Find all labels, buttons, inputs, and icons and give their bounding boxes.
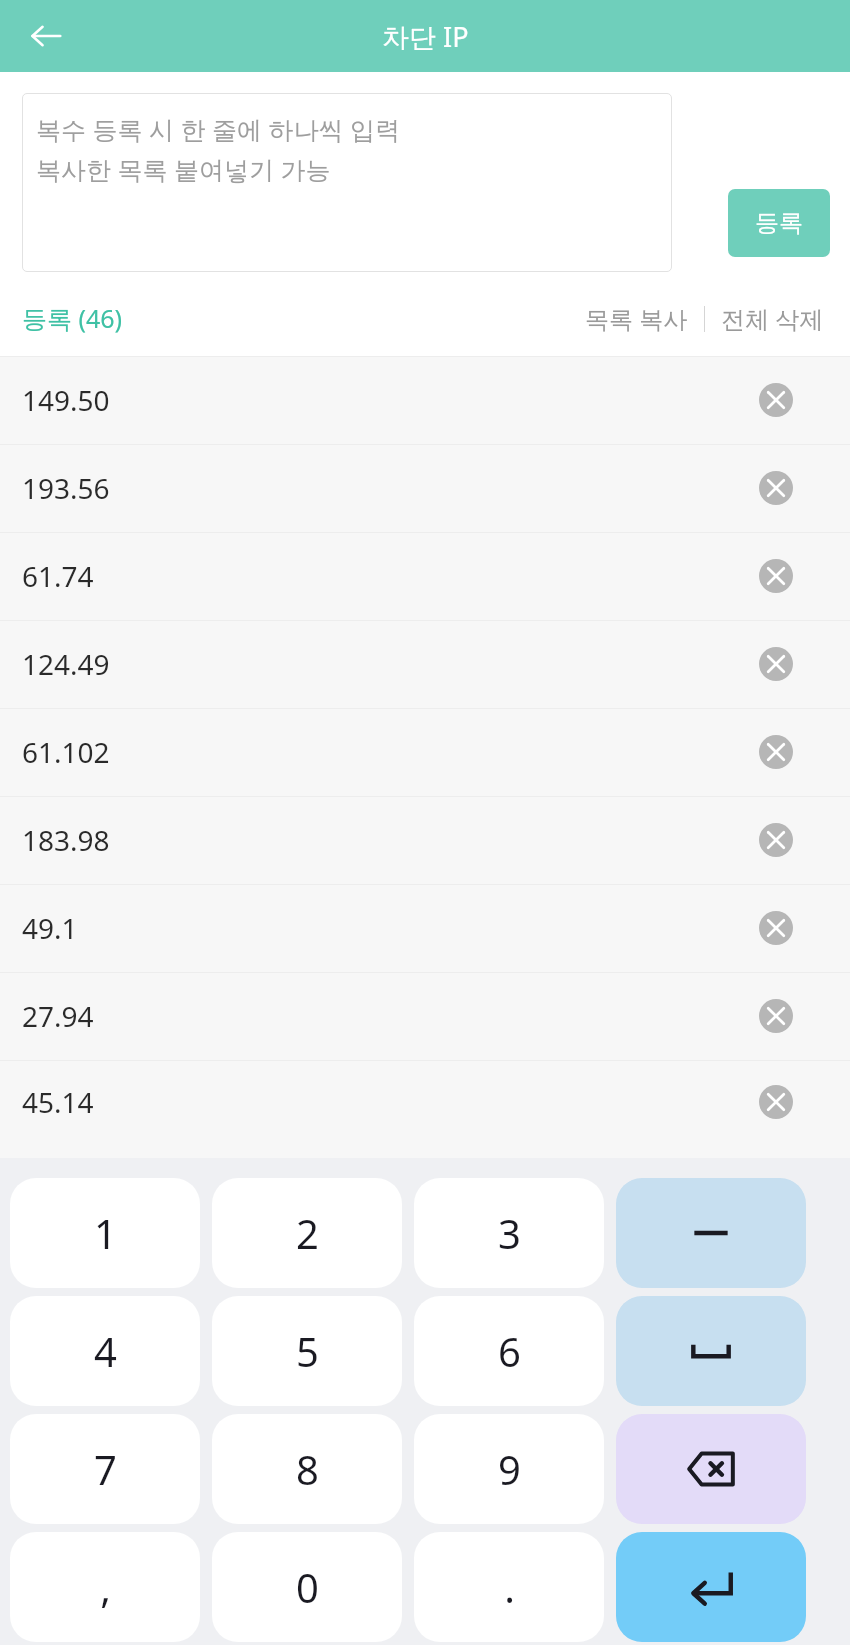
button[interactable]: Delete bbox=[752, 552, 800, 600]
button[interactable]: 6 bbox=[414, 1296, 604, 1406]
staticText: 등록 bbox=[755, 208, 803, 238]
button[interactable]: 183.98 bbox=[0, 796, 850, 884]
staticText: 차단 IP bbox=[382, 18, 469, 55]
staticText: 7 bbox=[94, 1442, 117, 1496]
button[interactable]: 193.56 bbox=[0, 444, 850, 532]
button[interactable]: 3 bbox=[414, 1178, 604, 1288]
button[interactable]: Space bbox=[616, 1296, 806, 1406]
staticText: , bbox=[100, 1560, 111, 1614]
button[interactable]: Delete bbox=[752, 1078, 800, 1126]
button[interactable]: Minus bbox=[616, 1178, 806, 1288]
staticText: 49.1 bbox=[22, 909, 78, 947]
button[interactable]: Delete bbox=[752, 640, 800, 688]
staticText: 193.56 bbox=[22, 469, 110, 507]
staticText: 3 bbox=[498, 1206, 521, 1260]
button[interactable]: 0 bbox=[212, 1532, 402, 1642]
button[interactable]: , bbox=[10, 1532, 200, 1642]
button[interactable]: 복수 등록 시 한 줄에 하나씩 입력 bbox=[22, 93, 672, 272]
button[interactable]: 45.14 bbox=[0, 1060, 850, 1144]
button[interactable]: 149.50 bbox=[0, 356, 850, 444]
button[interactable]: 124.49 bbox=[0, 620, 850, 708]
staticText: 61.74 bbox=[22, 557, 94, 595]
button[interactable]: 49.1 bbox=[0, 884, 850, 972]
staticText: 9 bbox=[498, 1442, 521, 1496]
button[interactable]: 8 bbox=[212, 1414, 402, 1524]
button[interactable]: 61.74 bbox=[0, 532, 850, 620]
staticText: . bbox=[504, 1560, 515, 1614]
button[interactable]: 27.94 bbox=[0, 972, 850, 1060]
button[interactable]: 등록 (46) bbox=[20, 295, 125, 341]
staticText: 27.94 bbox=[22, 997, 94, 1035]
staticText: 8 bbox=[296, 1442, 319, 1496]
staticText: 149.50 bbox=[22, 381, 110, 419]
button[interactable]: Back bbox=[14, 4, 78, 68]
staticText: 5 bbox=[296, 1324, 319, 1378]
button[interactable]: 전체 삭제 bbox=[715, 294, 830, 343]
staticText: 목록 복사 bbox=[585, 302, 688, 335]
staticText: 124.49 bbox=[22, 645, 110, 683]
button[interactable]: 2 bbox=[212, 1178, 402, 1288]
staticText: 복사한 목록 붙여넣기 가능 bbox=[36, 152, 331, 186]
button[interactable]: Delete bbox=[752, 816, 800, 864]
button[interactable]: Delete bbox=[752, 464, 800, 512]
button[interactable]: Delete bbox=[752, 904, 800, 952]
staticText: 183.98 bbox=[22, 821, 110, 859]
button[interactable]: Delete bbox=[752, 376, 800, 424]
staticText: 4 bbox=[94, 1324, 117, 1378]
button[interactable]: Enter bbox=[616, 1532, 806, 1642]
button[interactable]: Delete bbox=[752, 992, 800, 1040]
button[interactable]: 등록 bbox=[728, 189, 830, 257]
button[interactable]: Delete bbox=[752, 728, 800, 776]
staticText: 1 bbox=[94, 1206, 117, 1260]
button[interactable]: 5 bbox=[212, 1296, 402, 1406]
staticText: 6 bbox=[498, 1324, 521, 1378]
button[interactable]: 9 bbox=[414, 1414, 604, 1524]
staticText: 2 bbox=[296, 1206, 319, 1260]
staticText: 복수 등록 시 한 줄에 하나씩 입력 bbox=[36, 112, 401, 146]
button[interactable]: . bbox=[414, 1532, 604, 1642]
staticText: 0 bbox=[296, 1560, 319, 1614]
staticText: 전체 삭제 bbox=[721, 302, 824, 335]
button[interactable]: 61.102 bbox=[0, 708, 850, 796]
button[interactable]: 목록 복사 bbox=[579, 294, 694, 343]
staticText: 등록 (46) bbox=[22, 301, 123, 335]
staticText: 61.102 bbox=[22, 733, 110, 771]
button[interactable]: 7 bbox=[10, 1414, 200, 1524]
button[interactable]: Backspace bbox=[616, 1414, 806, 1524]
button[interactable]: 4 bbox=[10, 1296, 200, 1406]
button[interactable]: 1 bbox=[10, 1178, 200, 1288]
staticText: 45.14 bbox=[22, 1083, 94, 1121]
